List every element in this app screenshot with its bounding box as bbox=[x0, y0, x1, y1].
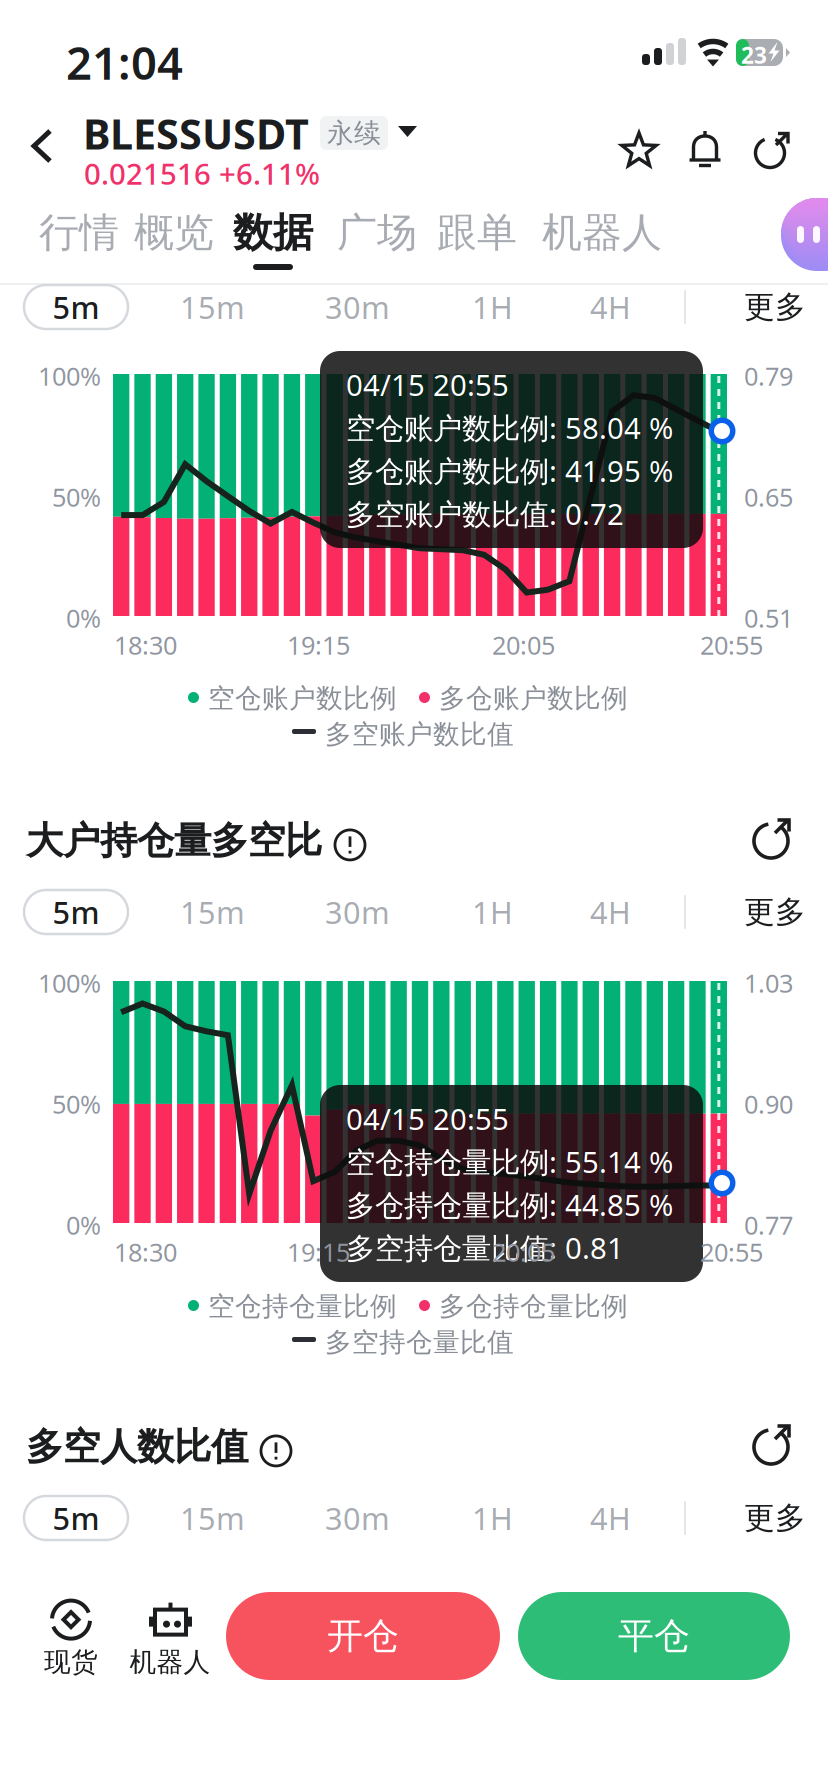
staticText: 多空持仓量比值: 0.81 bbox=[346, 1228, 624, 1267]
button[interactable]: 5m bbox=[24, 1496, 128, 1540]
button[interactable]: 概览 bbox=[134, 200, 214, 276]
staticText: 18:30 bbox=[114, 628, 177, 662]
staticText: 更多 bbox=[744, 1499, 806, 1537]
staticText: 100% bbox=[38, 966, 101, 1000]
button[interactable]: 1H bbox=[472, 285, 542, 329]
staticText: 0% bbox=[66, 601, 101, 635]
button[interactable]: 数据 bbox=[233, 200, 313, 276]
staticText: 平仓 bbox=[618, 1614, 690, 1658]
staticText: 100% bbox=[38, 359, 101, 393]
staticText: 0.65 bbox=[744, 480, 793, 514]
staticText: 多仓账户数比例: 41.95 % bbox=[346, 451, 673, 490]
staticText: 0% bbox=[66, 1208, 101, 1242]
staticText: 多仓账户数比例 bbox=[439, 682, 628, 715]
staticText: 概览 bbox=[134, 208, 214, 257]
button[interactable]: 现货 bbox=[23, 1590, 119, 1684]
button[interactable]: 30m bbox=[325, 890, 395, 934]
staticText: 多空账户数比值: 0.72 bbox=[346, 494, 624, 533]
staticText: 机器人 bbox=[542, 208, 662, 257]
button[interactable]: 15m bbox=[180, 1496, 250, 1540]
staticText: BLESSUSDT bbox=[83, 106, 309, 161]
staticText: 行情 bbox=[39, 208, 119, 257]
staticText: 多空账户数比值 bbox=[325, 718, 514, 751]
button[interactable]: 更多 bbox=[744, 1496, 814, 1540]
button[interactable]: 15m bbox=[180, 285, 250, 329]
staticText: 21:04 bbox=[66, 32, 183, 92]
staticText: 20:05 bbox=[492, 628, 555, 662]
staticText: 30m bbox=[325, 892, 390, 932]
button[interactable]: 5m bbox=[24, 285, 128, 329]
staticText: 0.021516 +6.11% bbox=[84, 154, 320, 193]
staticText: 04/15 20:55 bbox=[346, 365, 509, 404]
staticText: 多空人数比值 bbox=[26, 1424, 248, 1470]
staticText: 多仓持仓量比例: 44.85 % bbox=[346, 1185, 673, 1224]
staticText: 5m bbox=[52, 1498, 99, 1538]
staticText: 空仓持仓量比例: 55.14 % bbox=[346, 1142, 673, 1181]
staticText: 空仓账户数比例 bbox=[208, 682, 397, 715]
staticText: 更多 bbox=[744, 288, 806, 326]
staticText: 50% bbox=[52, 1087, 101, 1121]
button[interactable]: 广场 bbox=[337, 200, 417, 276]
button[interactable]: 更多 bbox=[744, 285, 814, 329]
staticText: 19:15 bbox=[287, 1235, 350, 1269]
staticText: 15m bbox=[180, 287, 245, 327]
staticText: 多空持仓量比值 bbox=[325, 1326, 514, 1359]
staticText: 空仓账户数比例: 58.04 % bbox=[346, 408, 673, 447]
button[interactable]: 4H bbox=[590, 1496, 660, 1540]
staticText: 4H bbox=[590, 892, 631, 932]
staticText: 1H bbox=[472, 892, 513, 932]
staticText: 20:55 bbox=[700, 628, 763, 662]
staticText: 50% bbox=[52, 480, 101, 514]
staticText: 15m bbox=[180, 1498, 245, 1538]
button[interactable]: Share bbox=[755, 130, 791, 170]
staticText: 1.03 bbox=[744, 966, 793, 1000]
staticText: 30m bbox=[325, 287, 390, 327]
button[interactable]: 4H bbox=[590, 890, 660, 934]
button[interactable]: 15m bbox=[180, 890, 250, 934]
staticText: 5m bbox=[52, 892, 99, 932]
staticText: 04/15 20:55 bbox=[346, 1099, 509, 1138]
staticText: 数据 bbox=[233, 208, 313, 257]
button[interactable]: 5m bbox=[24, 890, 128, 934]
staticText: 20:55 bbox=[700, 1235, 763, 1269]
staticText: 跟单 bbox=[437, 208, 517, 257]
button[interactable]: 行情 bbox=[39, 200, 119, 276]
button[interactable]: 平仓 bbox=[518, 1592, 790, 1680]
button[interactable]: 机器人 bbox=[542, 200, 662, 276]
staticText: 0.79 bbox=[744, 359, 793, 393]
staticText: 23 bbox=[741, 40, 767, 70]
staticText: 5m bbox=[52, 287, 99, 327]
button[interactable]: Open in new bbox=[752, 1422, 794, 1468]
button[interactable]: Alerts bbox=[688, 129, 722, 169]
staticText: 多仓持仓量比例 bbox=[439, 1290, 628, 1323]
staticText: 永续 bbox=[327, 117, 381, 149]
button[interactable]: Back bbox=[6, 106, 78, 186]
button[interactable]: Open in new bbox=[752, 816, 794, 862]
staticText: 广场 bbox=[337, 208, 417, 257]
staticText: 1H bbox=[472, 287, 513, 327]
staticText: 0.90 bbox=[744, 1087, 793, 1121]
staticText: 4H bbox=[590, 287, 631, 327]
button[interactable]: 机器人 bbox=[115, 1590, 225, 1684]
staticText: 机器人 bbox=[129, 1646, 210, 1678]
staticText: 20:05 bbox=[492, 1235, 555, 1269]
button[interactable]: 1H bbox=[472, 890, 542, 934]
button[interactable]: 1H bbox=[472, 1496, 542, 1540]
staticText: 开仓 bbox=[327, 1614, 399, 1658]
button[interactable]: 30m bbox=[325, 1496, 395, 1540]
button[interactable]: 30m bbox=[325, 285, 395, 329]
staticText: 大户持仓量多空比 bbox=[26, 818, 322, 864]
staticText: 18:30 bbox=[114, 1235, 177, 1269]
staticText: 现货 bbox=[44, 1646, 98, 1678]
staticText: 4H bbox=[590, 1498, 631, 1538]
staticText: 15m bbox=[180, 892, 245, 932]
button[interactable]: 开仓 bbox=[226, 1592, 500, 1680]
staticText: 0.77 bbox=[744, 1208, 793, 1242]
button[interactable]: 更多 bbox=[744, 890, 814, 934]
button[interactable]: 跟单 bbox=[437, 200, 517, 276]
staticText: 19:15 bbox=[287, 628, 350, 662]
button[interactable]: 4H bbox=[590, 285, 660, 329]
staticText: 更多 bbox=[744, 893, 806, 931]
staticText: 0.51 bbox=[744, 601, 793, 635]
button[interactable]: Favorite bbox=[620, 132, 658, 170]
